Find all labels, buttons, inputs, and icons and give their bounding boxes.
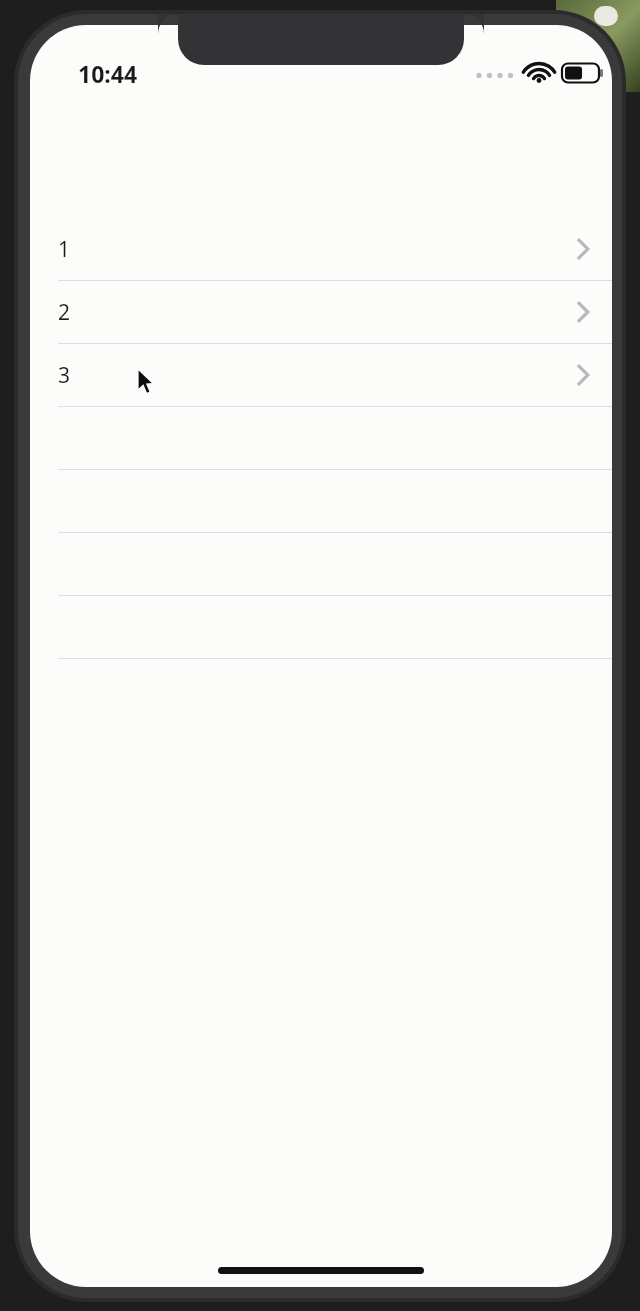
button[interactable] — [30, 533, 612, 596]
button[interactable] — [30, 470, 612, 533]
button[interactable]: 2 — [30, 281, 612, 344]
button[interactable]: 3 — [30, 344, 612, 407]
staticText: 1 — [58, 235, 71, 264]
button[interactable] — [30, 407, 612, 470]
other: Open 1 — [570, 234, 596, 264]
staticText: 2 — [58, 298, 71, 327]
button[interactable] — [30, 596, 612, 659]
staticText: 3 — [58, 361, 71, 390]
other: Open 3 — [570, 360, 596, 390]
staticText: 10:44 — [78, 58, 138, 89]
other: Open 2 — [570, 297, 596, 327]
button[interactable]: 1 — [30, 218, 612, 281]
